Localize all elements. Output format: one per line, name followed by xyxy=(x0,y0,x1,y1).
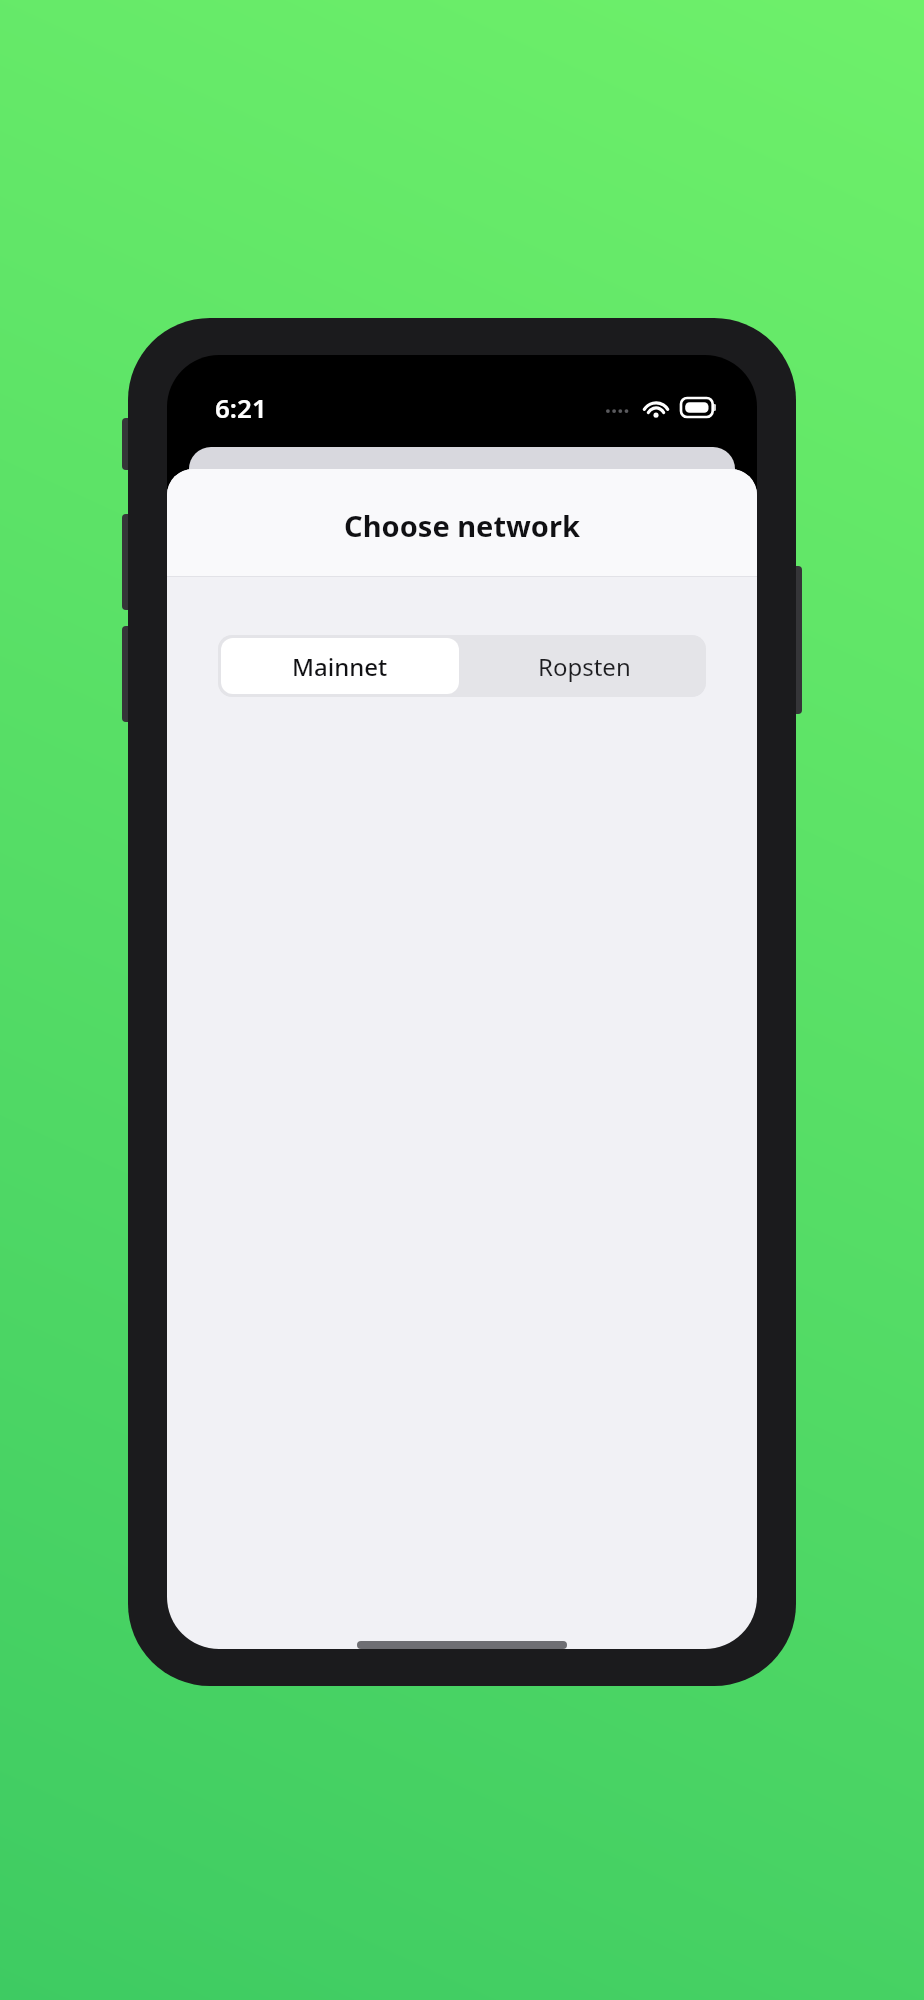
staticText: Mainnet xyxy=(292,650,388,683)
staticText: 6:21 xyxy=(215,390,267,425)
other: Wi-Fi xyxy=(641,396,671,418)
button[interactable]: Ropsten xyxy=(462,635,706,697)
button[interactable]: Mainnet xyxy=(221,638,459,694)
other: Battery xyxy=(681,398,717,417)
staticText: Choose network xyxy=(344,506,580,545)
staticText: Ropsten xyxy=(538,650,631,683)
